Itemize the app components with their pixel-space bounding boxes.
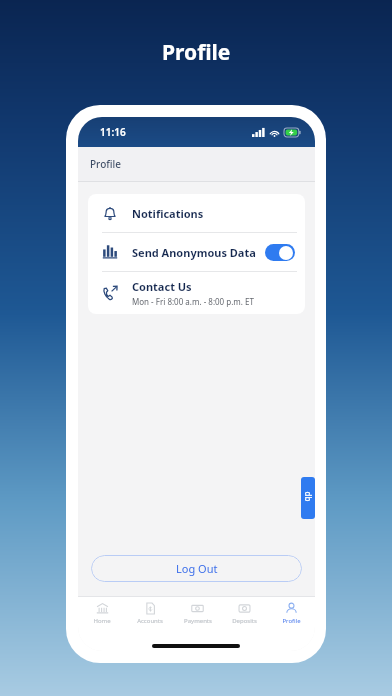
staticText: Profile	[282, 617, 301, 625]
button[interactable]: Log Out	[91, 555, 302, 582]
button[interactable]: Payments	[174, 597, 221, 629]
staticText: Mon - Fri 8:00 a.m. - 8:00 p.m. ET	[132, 296, 254, 307]
button[interactable]: Home	[78, 597, 126, 629]
staticText: Deposits	[232, 617, 257, 625]
button[interactable]: Send Anonymous Data toggle	[265, 244, 295, 261]
staticText: Notifications	[132, 206, 204, 221]
button[interactable]: Send Anonymous Data	[88, 233, 305, 271]
button[interactable]: Contact Us	[88, 272, 305, 314]
staticText: Accounts	[137, 617, 163, 625]
button[interactable]: Profile	[268, 597, 315, 629]
button[interactable]: Notifications	[88, 194, 305, 232]
staticText: Profile	[162, 38, 231, 67]
staticText: Log Out	[176, 561, 218, 576]
staticText: 11:16	[100, 125, 126, 139]
staticText: Payments	[184, 617, 212, 625]
button[interactable]: Accounts	[126, 597, 174, 629]
staticText: Contact Us	[132, 279, 192, 294]
staticText: Profile	[90, 157, 121, 171]
staticText: Feedback	[301, 491, 315, 505]
staticText: Send Anonymous Data	[132, 245, 256, 260]
staticText: Home	[93, 617, 111, 625]
button[interactable]: Feedback	[301, 477, 315, 519]
button[interactable]: Deposits	[221, 597, 268, 629]
